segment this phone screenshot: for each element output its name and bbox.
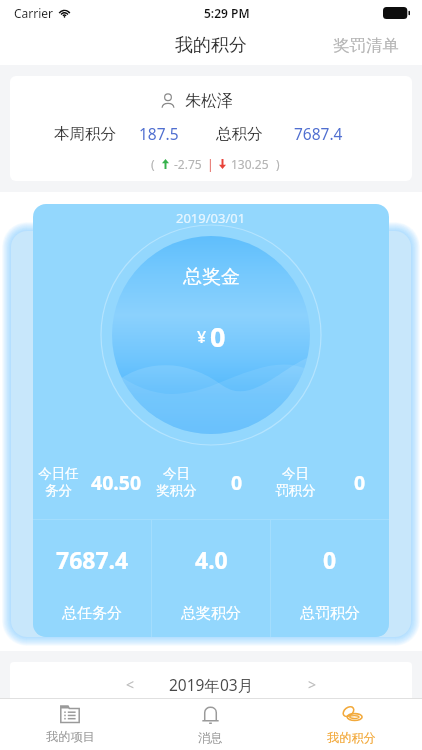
staticText: 2019年03月 <box>169 674 254 695</box>
staticText: Carrier <box>14 5 54 21</box>
staticText: -2.75 <box>174 156 202 172</box>
button[interactable]: 我的项目 <box>0 699 140 750</box>
staticText: 0 <box>354 469 366 496</box>
button[interactable]: 奖罚清单 <box>315 26 422 65</box>
staticText: > <box>308 675 317 694</box>
staticText: 朱松泽 <box>185 91 233 111</box>
staticText: 7687.4 <box>294 123 343 144</box>
staticText: 0 <box>231 469 243 496</box>
staticText: 今日任 务分 <box>38 465 79 499</box>
staticText: ( <box>151 156 155 172</box>
staticText: 总奖金 <box>183 265 240 289</box>
staticText: 本周积分 <box>54 124 116 144</box>
staticText: 我的项目 <box>46 729 95 744</box>
staticText: 2019/03/01 <box>176 209 246 227</box>
staticText: 187.5 <box>139 123 179 144</box>
staticText: 今日 奖积分 <box>156 465 197 499</box>
staticText: 我的积分 <box>175 34 247 57</box>
button[interactable]: 我的积分 <box>281 699 422 750</box>
staticText: 消息 <box>198 730 223 745</box>
staticText: < <box>126 675 135 694</box>
staticText: 总积分 <box>216 124 263 144</box>
staticText: 130.25 <box>231 156 269 172</box>
staticText: 总奖积分 <box>181 604 241 623</box>
staticText: | <box>207 156 214 172</box>
staticText: 总任务分 <box>62 604 122 623</box>
staticText: ¥ <box>197 326 207 348</box>
staticText: 5:29 PM <box>204 5 250 21</box>
button[interactable]: 消息 <box>140 699 281 750</box>
staticText: 4.0 <box>195 544 228 575</box>
staticText: ) <box>276 156 280 172</box>
staticText: 0 <box>210 318 226 355</box>
staticText: 奖罚清单 <box>333 35 399 56</box>
staticText: 7687.4 <box>56 544 129 575</box>
staticText: 0 <box>323 544 337 575</box>
staticText: 今日 罚积分 <box>275 465 316 499</box>
button[interactable]: Previous month <box>114 662 146 706</box>
staticText: 总罚积分 <box>300 604 360 623</box>
staticText: 40.50 <box>91 469 142 496</box>
button[interactable]: Next month <box>296 662 328 706</box>
staticText: 我的积分 <box>327 730 376 745</box>
